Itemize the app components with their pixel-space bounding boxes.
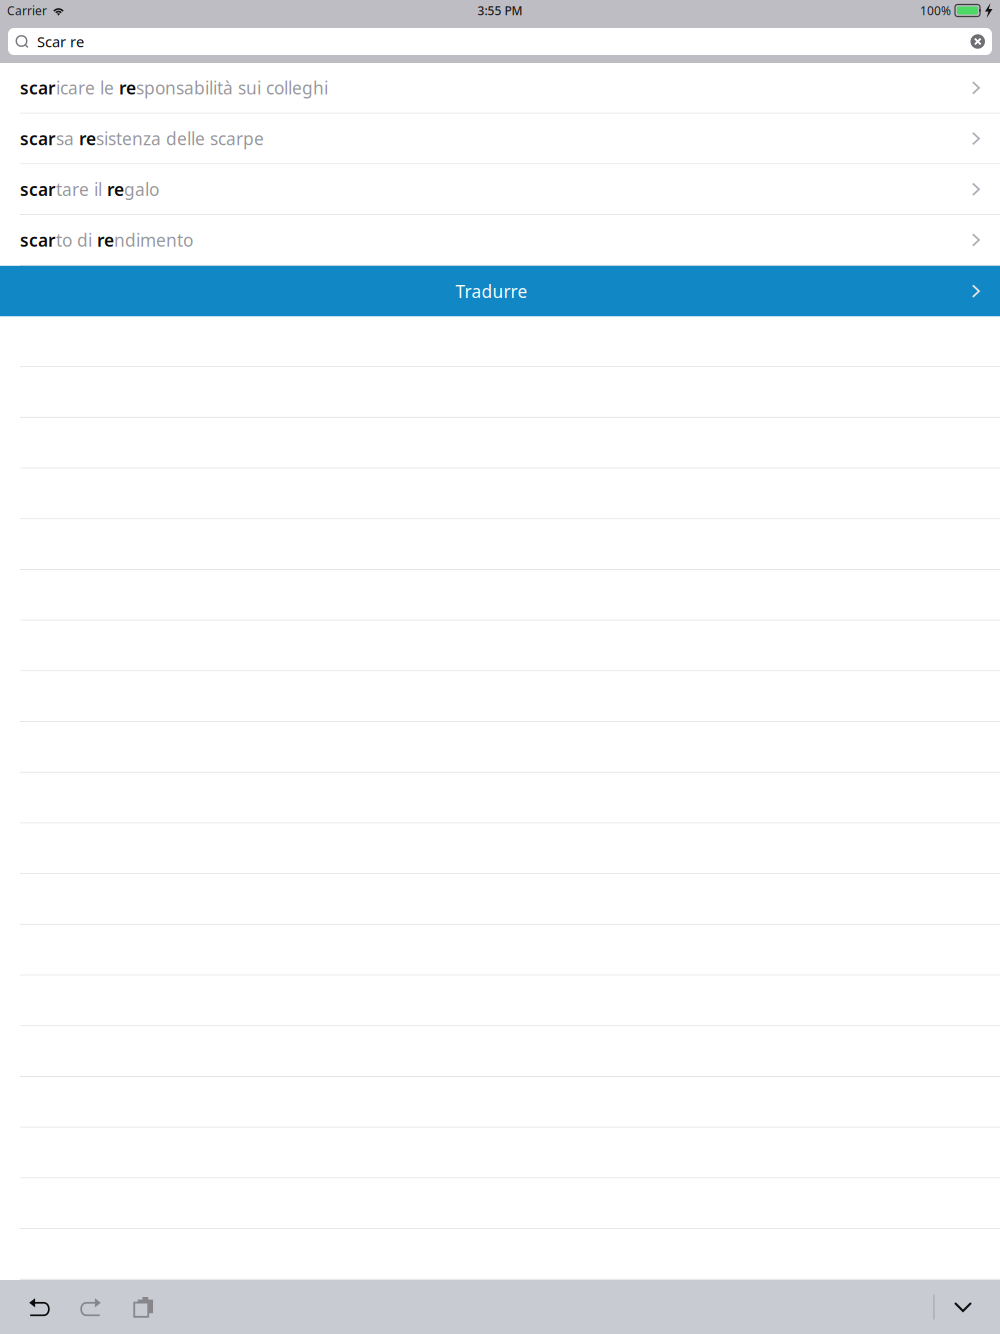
staticText: sponsabilità sui colleghi bbox=[136, 76, 328, 99]
staticText: Scar re bbox=[37, 32, 84, 51]
button[interactable]: Redo bbox=[65, 1280, 116, 1334]
button[interactable]: Paste bbox=[116, 1280, 167, 1334]
staticText: re bbox=[97, 228, 114, 251]
button[interactable]: Undo bbox=[14, 1280, 65, 1334]
staticText: galo bbox=[124, 178, 159, 201]
staticText: scar bbox=[20, 178, 56, 201]
staticText: 100% bbox=[920, 2, 951, 18]
button[interactable]: scar bbox=[0, 114, 1000, 164]
staticText: re bbox=[79, 127, 96, 150]
staticText: re bbox=[119, 76, 136, 99]
staticText: scar bbox=[20, 228, 56, 251]
staticText: sa bbox=[56, 127, 79, 150]
button[interactable]: scar bbox=[0, 164, 1000, 215]
staticText: sistenza delle scarpe bbox=[96, 127, 264, 150]
button[interactable]: Scar re bbox=[8, 28, 992, 55]
button[interactable]: Hide Keyboard bbox=[934, 1280, 991, 1334]
staticText: scar bbox=[20, 76, 56, 99]
staticText: ndimento bbox=[114, 228, 193, 251]
staticText: Carrier bbox=[7, 2, 47, 18]
staticText: tare il bbox=[56, 178, 107, 201]
button[interactable]: Tradurre bbox=[0, 266, 1000, 316]
button[interactable]: scar bbox=[0, 215, 1000, 266]
button[interactable]: scar bbox=[0, 63, 1000, 114]
staticText: re bbox=[107, 178, 124, 201]
staticText: Tradurre bbox=[455, 280, 527, 303]
staticText: to di bbox=[56, 228, 97, 251]
staticText: 3:55 PM bbox=[477, 2, 522, 18]
staticText: icare le bbox=[56, 76, 119, 99]
staticText: scar bbox=[20, 127, 56, 150]
